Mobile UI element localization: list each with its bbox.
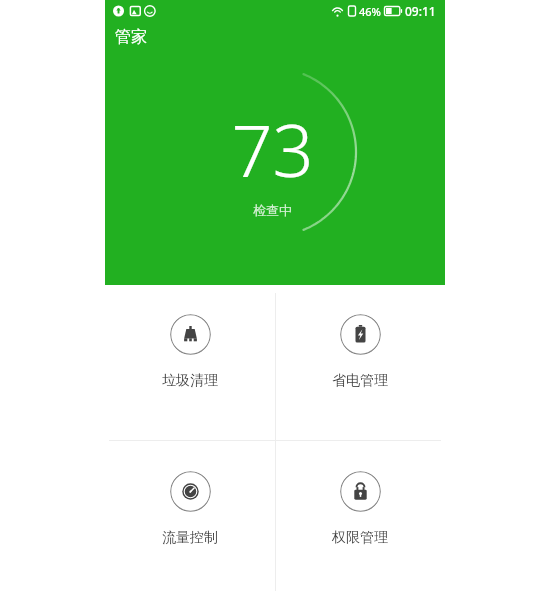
other: 省电管理	[340, 314, 381, 355]
staticText: 权限管理	[332, 529, 388, 547]
staticText: 流量控制	[162, 529, 218, 547]
other: 流量控制	[170, 471, 211, 512]
button[interactable]: 权限管理	[275, 442, 445, 599]
staticText: 垃圾清理	[162, 372, 218, 390]
other: 垃圾清理	[170, 314, 211, 355]
staticText: 73	[231, 100, 314, 198]
button[interactable]: 省电管理	[275, 285, 445, 442]
staticText: 09:11	[405, 3, 436, 19]
button[interactable]: 流量控制	[105, 442, 275, 599]
staticText: 管家	[115, 27, 147, 47]
other: 权限管理	[340, 471, 381, 512]
staticText: 省电管理	[332, 372, 388, 390]
staticText: 检查中	[253, 202, 292, 218]
button[interactable]: 垃圾清理	[105, 285, 275, 442]
staticText: 46%	[359, 4, 381, 19]
